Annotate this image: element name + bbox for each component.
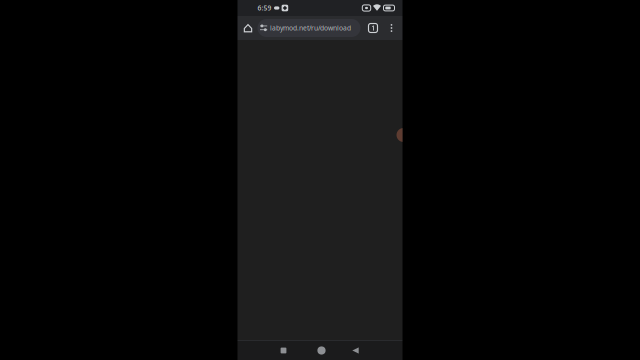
button[interactable]: Home (309, 341, 333, 360)
button[interactable]: More options (385, 18, 397, 38)
staticText: labymod.net/ru/download (270, 24, 351, 32)
button[interactable]: Chat support (396, 128, 410, 142)
staticText: 6:59 (257, 4, 271, 12)
button[interactable]: Tabs (366, 18, 379, 38)
button[interactable]: Back (343, 341, 367, 360)
button[interactable]: labymod.net/ru/download (257, 19, 360, 37)
button[interactable]: Recent apps (271, 341, 295, 360)
button[interactable]: Home (240, 18, 255, 38)
